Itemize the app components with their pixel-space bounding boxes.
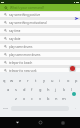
staticText: m: [62, 96, 66, 101]
button[interactable]: say something positive: [0, 12, 80, 17]
button[interactable]: Home: [37, 119, 44, 126]
staticText: a: [7, 87, 10, 92]
staticText: p: [75, 78, 78, 83]
button[interactable]: v: [36, 94, 44, 103]
staticText: s: [15, 87, 17, 92]
staticText: j: [55, 87, 57, 92]
button[interactable]: Recents: [59, 119, 66, 126]
staticText: x: [23, 96, 26, 101]
button[interactable]: l: [68, 85, 76, 94]
staticText: say time: [9, 29, 21, 33]
button[interactable]: b: [44, 94, 52, 103]
button[interactable]: teleport to new york: [0, 68, 80, 73]
staticText: v: [39, 96, 42, 101]
staticText: o: [67, 78, 70, 83]
button[interactable]: x: [20, 94, 28, 103]
button[interactable]: f: [28, 85, 36, 94]
button[interactable]: k: [60, 85, 68, 94]
staticText: teleport to beach: [9, 61, 33, 65]
staticText: play some more drums: [9, 53, 41, 57]
button[interactable]: w: [8, 76, 16, 85]
button[interactable]: n: [52, 94, 60, 103]
staticText: c: [31, 96, 33, 101]
button[interactable]: t: [32, 76, 40, 85]
button[interactable]: s: [12, 85, 20, 94]
staticText: teleport to new york: [9, 69, 37, 73]
staticText: i: [59, 78, 61, 83]
button[interactable]: say date: [0, 36, 80, 41]
staticText: k: [63, 87, 66, 92]
button[interactable]: g: [36, 85, 44, 94]
staticText: b: [47, 96, 50, 101]
staticText: y: [43, 78, 46, 83]
button[interactable]: a: [4, 85, 12, 94]
button[interactable]: j: [52, 85, 60, 94]
button[interactable]: Symbols: [2, 105, 8, 111]
staticText: q: [3, 78, 6, 83]
button[interactable]: i: [56, 76, 64, 85]
button[interactable]: e: [16, 76, 24, 85]
button[interactable]: m: [60, 94, 68, 103]
staticText: f: [31, 87, 33, 92]
button[interactable]: y: [40, 76, 48, 85]
button[interactable]: say something motivational: [0, 20, 80, 25]
staticText: h: [47, 87, 50, 92]
button[interactable]: u: [48, 76, 56, 85]
staticText: .: [75, 106, 76, 110]
staticText: l: [71, 87, 73, 92]
staticText: n: [55, 96, 58, 101]
button[interactable]: Back: [14, 119, 21, 126]
button[interactable]: r: [24, 76, 32, 85]
button[interactable]: Send: [74, 16, 79, 21]
button[interactable]: Microphone: [70, 66, 75, 71]
button[interactable]: o: [64, 76, 72, 85]
staticText: ?123: [3, 107, 8, 110]
staticText: What's your command?: [10, 6, 45, 10]
staticText: r: [27, 78, 29, 83]
button[interactable]: say time: [0, 28, 80, 33]
button[interactable]: play some more drums: [0, 52, 80, 57]
button[interactable]: p: [72, 76, 80, 85]
button[interactable]: c: [28, 94, 36, 103]
staticText: say date: [9, 37, 21, 41]
button[interactable]: q: [0, 76, 8, 85]
button[interactable]: play some drums: [0, 44, 80, 49]
staticText: g: [39, 87, 42, 92]
staticText: u: [51, 78, 54, 83]
button[interactable]: Enter: [72, 92, 76, 96]
button[interactable]: h: [44, 85, 52, 94]
button[interactable]: What's your command?: [0, 4, 80, 11]
staticText: e: [19, 78, 22, 83]
staticText: say something motivational: [9, 21, 47, 25]
staticText: d: [23, 87, 26, 92]
staticText: play some drums: [9, 45, 33, 49]
staticText: z: [15, 96, 17, 101]
staticText: w: [10, 78, 14, 83]
button[interactable]: d: [20, 85, 28, 94]
button[interactable]: teleport to beach: [0, 60, 80, 65]
staticText: say something positive: [9, 13, 41, 17]
button[interactable]: z: [12, 94, 20, 103]
staticText: t: [35, 78, 37, 83]
